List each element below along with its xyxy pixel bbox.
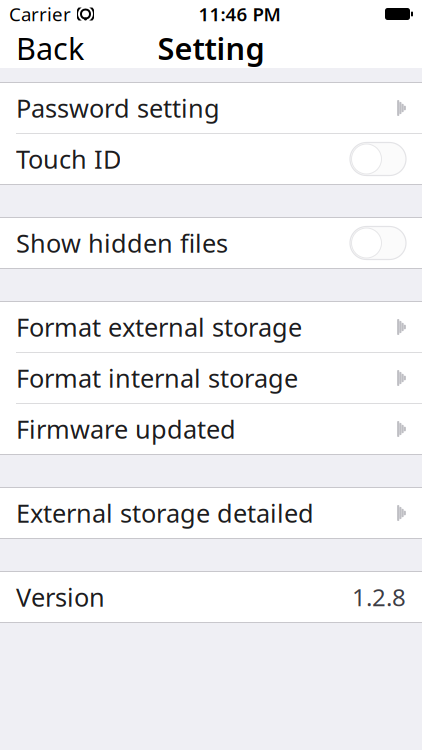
- staticText: External storage detailed: [16, 496, 314, 530]
- button[interactable]: Show hidden files: [0, 218, 422, 268]
- staticText: Format internal storage: [16, 361, 298, 395]
- staticText: 1.2.8: [352, 581, 406, 613]
- staticText: Version: [16, 580, 105, 614]
- staticText: Show hidden files: [16, 226, 228, 260]
- button[interactable]: Format external storage: [0, 302, 422, 352]
- button[interactable]: Touch ID: [0, 134, 422, 184]
- staticText: Password setting: [16, 91, 220, 125]
- staticText: 11:46 PM: [198, 2, 280, 26]
- staticText: Back: [16, 28, 84, 68]
- button[interactable]: Back: [0, 28, 100, 68]
- staticText: Touch ID: [16, 142, 121, 176]
- button[interactable]: Firmware updated: [0, 404, 422, 454]
- button[interactable]: Password setting: [0, 83, 422, 133]
- staticText: Carrier: [9, 2, 71, 26]
- button[interactable]: Format internal storage: [0, 353, 422, 403]
- staticText: Firmware updated: [16, 412, 236, 446]
- button[interactable]: External storage detailed: [0, 488, 422, 538]
- staticText: Setting: [157, 28, 264, 68]
- staticText: Format external storage: [16, 310, 302, 344]
